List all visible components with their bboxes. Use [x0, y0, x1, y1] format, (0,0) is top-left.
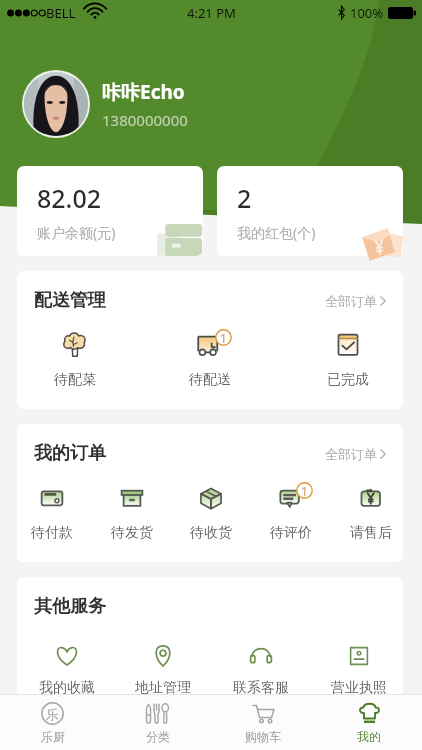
staticText: 待付款 — [31, 524, 73, 542]
staticText: 其他服务 — [34, 595, 106, 618]
staticText: 2 — [237, 181, 252, 215]
staticText: 账户余额(元) — [37, 223, 116, 242]
staticText: 4:21 PM — [187, 4, 236, 22]
button[interactable]: 营业执照 — [310, 642, 403, 697]
button[interactable]: 1 — [145, 331, 274, 389]
staticText: 我的订单 — [34, 442, 106, 465]
staticText: 我的 — [357, 729, 381, 744]
staticText: 乐 — [46, 706, 59, 722]
button[interactable]: 我的 — [316, 695, 422, 750]
staticText: 已完成 — [327, 371, 369, 389]
button[interactable]: 2 — [217, 166, 403, 256]
button[interactable]: 全部订单 — [323, 291, 388, 311]
button[interactable]: 购物车 — [210, 695, 316, 750]
staticText: 待评价 — [270, 524, 312, 542]
button[interactable]: 已完成 — [283, 331, 403, 389]
staticText: 100% — [350, 4, 384, 22]
staticText: 我的收藏 — [39, 679, 95, 697]
staticText: 82.02 — [37, 181, 102, 215]
button[interactable]: 请售后 — [332, 484, 403, 542]
button[interactable]: 全部订单 — [323, 444, 388, 464]
button[interactable]: 联系客服 — [212, 642, 309, 697]
staticText: 分类 — [146, 729, 170, 744]
staticText: 1 — [301, 483, 308, 499]
staticText: 全部订单 — [325, 293, 377, 309]
button[interactable]: 待配菜 — [17, 331, 139, 389]
button[interactable]: 待收货 — [172, 484, 249, 542]
staticText: 1 — [220, 330, 227, 346]
staticText: 待配送 — [189, 371, 231, 389]
staticText: 待配菜 — [54, 371, 96, 389]
staticText: 待收货 — [190, 524, 232, 542]
button[interactable]: 分类 — [105, 695, 210, 750]
staticText: 地址管理 — [135, 679, 191, 697]
staticText: 乐厨 — [41, 729, 65, 744]
staticText: 配送管理 — [34, 289, 106, 312]
button[interactable]: 待付款 — [17, 484, 91, 542]
staticText: 营业执照 — [331, 679, 387, 697]
staticText: 联系客服 — [233, 679, 289, 697]
button[interactable]: 82.02 — [17, 166, 203, 256]
staticText: 全部订单 — [325, 446, 377, 462]
staticText: BELL — [46, 4, 76, 22]
staticText: 待发货 — [111, 524, 153, 542]
staticText: 咔咔Echo — [102, 79, 185, 105]
button[interactable]: 1 — [252, 484, 329, 542]
staticText: 请售后 — [350, 524, 392, 542]
button[interactable]: 地址管理 — [115, 642, 211, 697]
staticText: 我的红包(个) — [237, 223, 316, 242]
button[interactable]: 待发货 — [93, 484, 170, 542]
button[interactable]: 我的收藏 — [19, 642, 115, 697]
button[interactable]: 乐 — [0, 695, 105, 750]
staticText: 1380000000 — [102, 110, 188, 130]
staticText: 购物车 — [245, 729, 281, 744]
